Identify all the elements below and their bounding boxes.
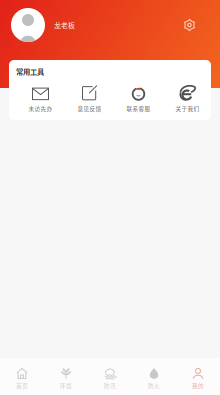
staticText: 防汛 [104, 381, 116, 389]
staticText: 首页 [16, 381, 28, 389]
button[interactable]: 我的 [176, 356, 220, 395]
staticText: 联系客服 [126, 105, 150, 113]
staticText: 我的 [192, 381, 204, 389]
staticText: 常用工具 [16, 66, 44, 77]
button[interactable]: 防汛 [88, 356, 132, 395]
staticText: 龙老板 [54, 20, 75, 30]
button[interactable]: 环境 [44, 356, 88, 395]
button[interactable]: 防火 [132, 356, 176, 395]
staticText: 防火 [148, 381, 160, 389]
button[interactable]: 未访先办 [17, 84, 64, 113]
staticText: 关于我们 [175, 105, 199, 113]
staticText: 环境 [60, 381, 72, 389]
button[interactable]: Settings [184, 19, 195, 30]
staticText: 意见反馈 [77, 105, 101, 113]
button[interactable]: 意见反馈 [66, 84, 113, 113]
button[interactable]: 关于我们 [164, 84, 211, 113]
button[interactable]: 龙老板 [11, 8, 75, 42]
button[interactable]: 联系客服 [115, 84, 162, 113]
staticText: 未访先办 [28, 105, 52, 113]
button[interactable]: 首页 [0, 356, 44, 395]
